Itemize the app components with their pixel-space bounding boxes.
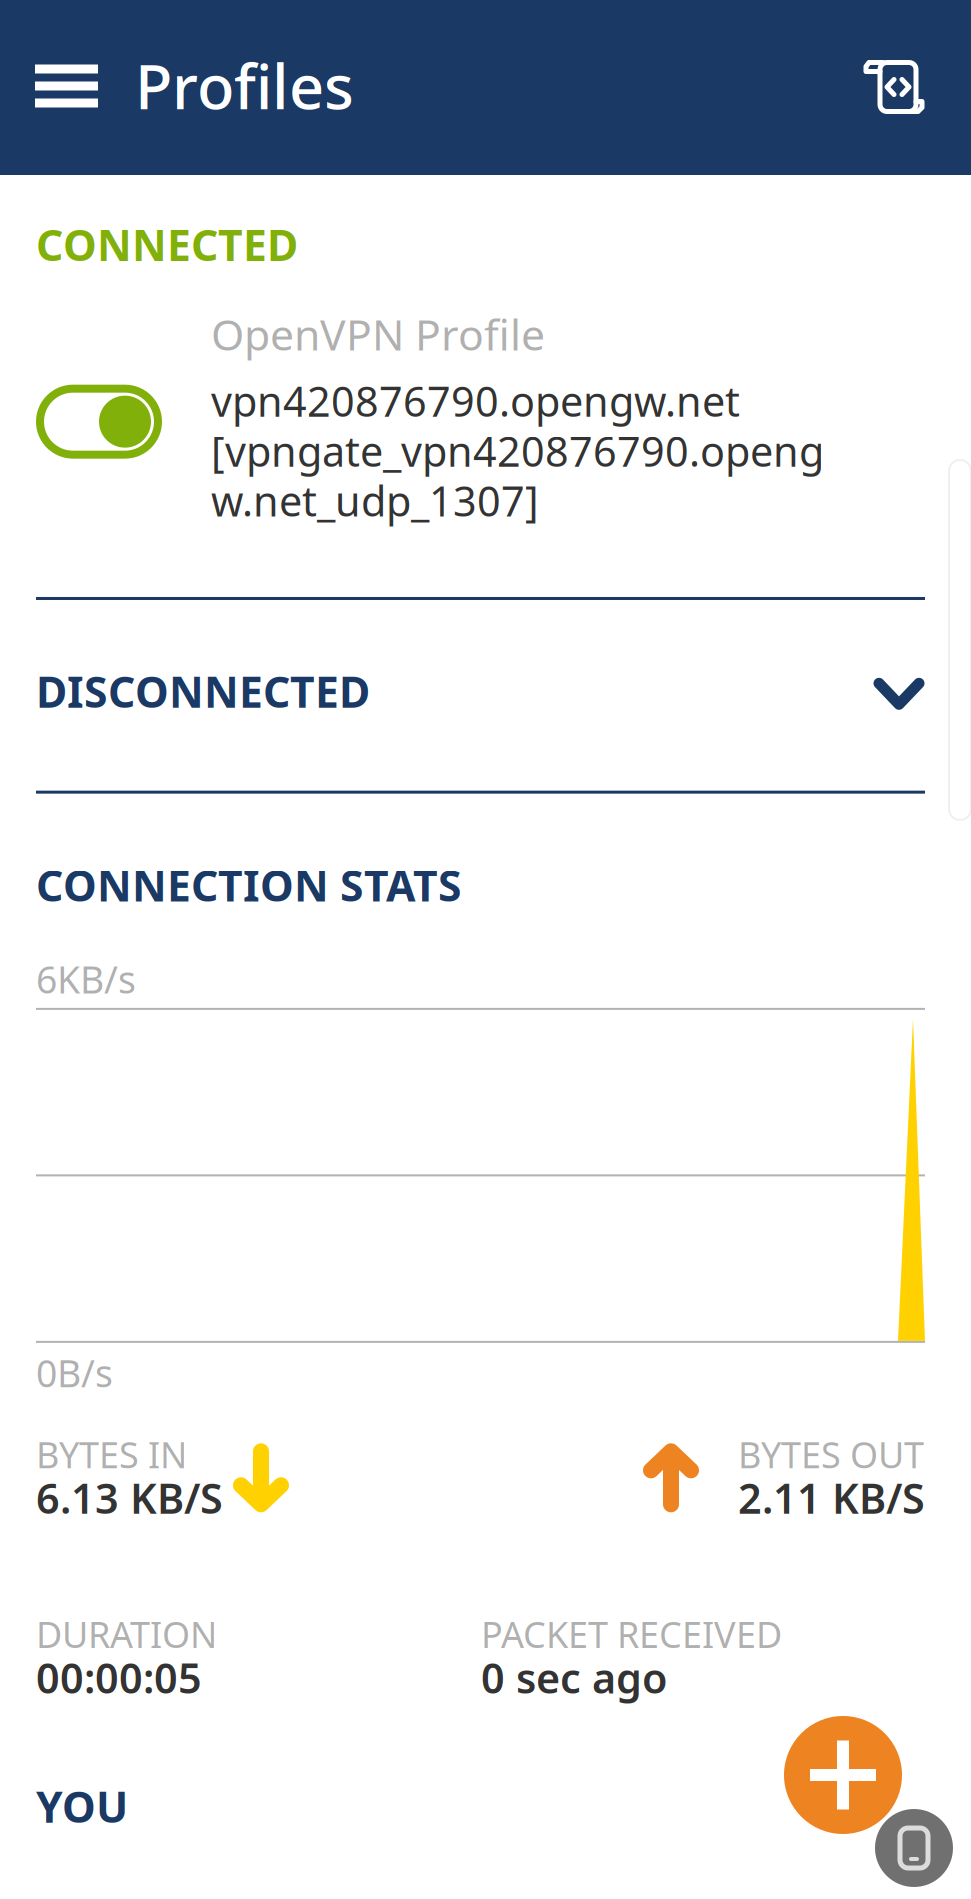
staticText: PACKET RECEIVED [481, 1610, 782, 1658]
staticText: DURATION [36, 1610, 217, 1658]
button[interactable]: Import profile [863, 0, 971, 175]
staticText: CONNECTED [36, 216, 298, 273]
button[interactable]: Import profile from device [875, 1809, 953, 1887]
staticText: vpn420876790.opengw.net [vpngate_vpn4208… [211, 373, 824, 528]
staticText: Profiles [135, 45, 354, 126]
staticText: OpenVPN Profile [211, 306, 545, 362]
button[interactable]: DISCONNECTED [36, 663, 925, 720]
staticText: BYTES OUT [738, 1430, 924, 1478]
button[interactable]: Disconnect VPN [36, 306, 211, 516]
button[interactable]: OpenVPN Profile [211, 306, 824, 528]
staticText: YOU [36, 1778, 128, 1834]
staticText: 0B/s [36, 1348, 113, 1397]
staticText: BYTES IN [36, 1430, 187, 1478]
staticText: 6.13 KB/S [36, 1470, 223, 1525]
button[interactable]: Menu [0, 0, 141, 175]
button[interactable]: Add profile [784, 1716, 902, 1834]
staticText: DISCONNECTED [36, 663, 370, 720]
staticText: 0 sec ago [481, 1650, 668, 1705]
staticText: 00:00:05 [36, 1650, 202, 1705]
staticText: 2.11 KB/S [738, 1470, 925, 1525]
staticText: CONNECTION STATS [36, 857, 462, 913]
staticText: 6KB/s [36, 954, 136, 1004]
